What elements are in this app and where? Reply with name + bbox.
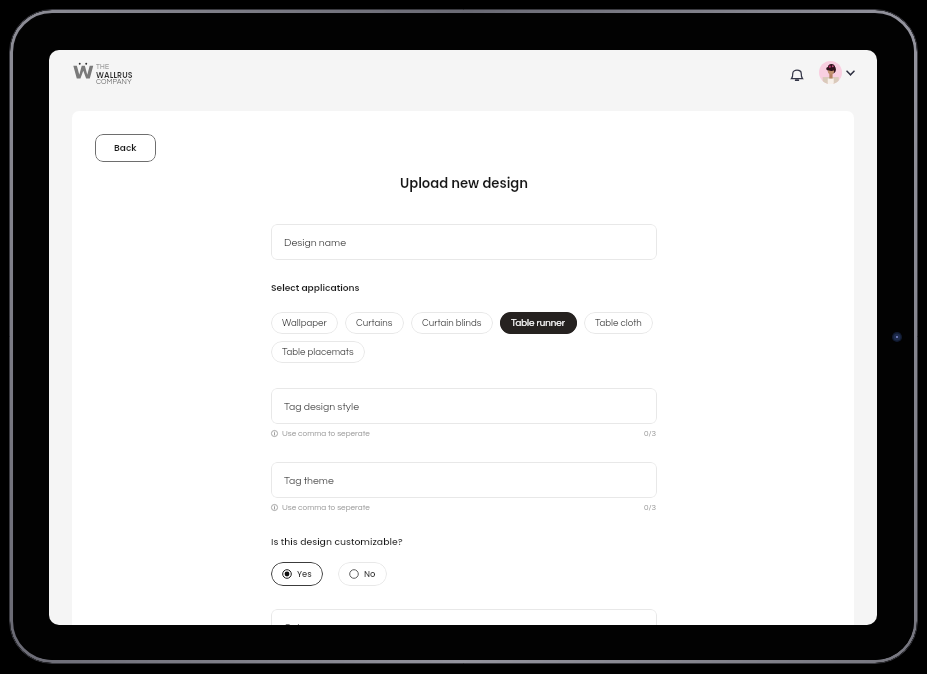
button[interactable]: Table runner <box>500 312 577 334</box>
staticText: Colors <box>284 622 314 625</box>
button[interactable]: Profile <box>819 61 842 84</box>
button[interactable]: Curtain blinds <box>411 312 493 334</box>
staticText: Wallpaper <box>282 318 327 328</box>
staticText: Tag design style <box>284 401 360 412</box>
staticText: THE <box>96 63 110 70</box>
button[interactable]: No <box>338 562 387 586</box>
staticText: 0/3 <box>644 429 657 437</box>
staticText: WALLRUS <box>96 70 133 81</box>
staticText: Use comma to seperate <box>282 503 370 511</box>
staticText: Is this design customizable? <box>271 535 403 548</box>
staticText: Select applications <box>271 281 360 294</box>
staticText: Curtains <box>356 318 393 328</box>
staticText: Back <box>114 142 137 155</box>
staticText: Upload new design <box>271 174 657 192</box>
staticText: COMPANY <box>96 78 132 86</box>
staticText: No <box>364 568 376 580</box>
button[interactable]: Open account menu <box>841 64 859 82</box>
button[interactable]: Curtains <box>345 312 404 334</box>
staticText: Table placemats <box>282 347 354 357</box>
button[interactable]: Yes <box>271 562 323 586</box>
button[interactable]: Notifications <box>785 62 809 86</box>
button[interactable]: Table placemats <box>271 341 365 363</box>
staticText: Tag theme <box>284 475 334 486</box>
staticText: Table cloth <box>595 318 642 328</box>
button[interactable]: Colors <box>271 609 657 625</box>
button[interactable]: Table cloth <box>584 312 653 334</box>
button[interactable]: Design name <box>271 224 657 260</box>
staticText: Yes <box>297 568 312 580</box>
staticText: Design name <box>284 237 347 248</box>
button[interactable]: Back <box>95 134 156 162</box>
staticText: 0/3 <box>644 503 657 511</box>
staticText: Table runner <box>511 318 566 328</box>
button[interactable]: Tag theme <box>271 462 657 498</box>
button[interactable]: Tag design style <box>271 388 657 424</box>
button[interactable]: Wallpaper <box>271 312 338 334</box>
staticText: Curtain blinds <box>422 318 482 328</box>
staticText: Use comma to seperate <box>282 429 370 437</box>
